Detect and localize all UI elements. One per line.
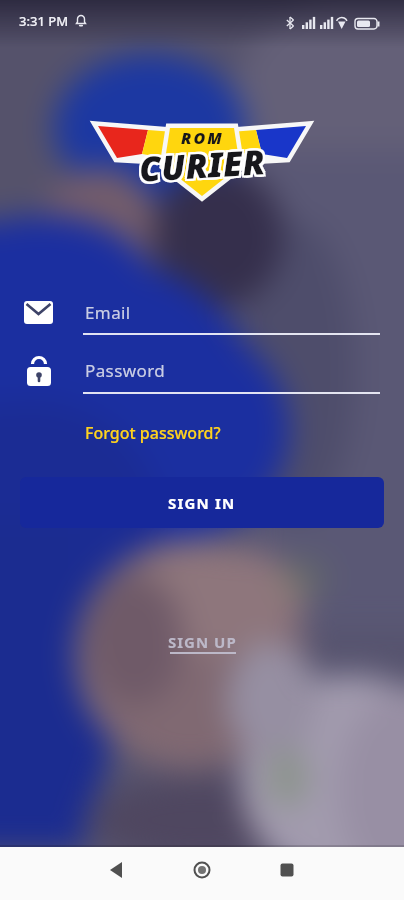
staticText: CURIER bbox=[138, 140, 267, 188]
staticText: CURIER bbox=[140, 140, 269, 188]
staticText: CURIER bbox=[140, 136, 269, 184]
staticText: CURIER bbox=[136, 140, 265, 188]
button[interactable]: Password bbox=[83, 353, 380, 395]
staticText: SIGN UP bbox=[168, 632, 237, 652]
button[interactable] bbox=[104, 857, 130, 883]
staticText: SIGN IN bbox=[168, 493, 236, 513]
staticText: CURIER bbox=[140, 138, 269, 186]
button[interactable]: SIGN UP bbox=[168, 632, 237, 654]
button[interactable] bbox=[274, 857, 300, 883]
staticText: 3:31 PM bbox=[19, 12, 69, 30]
button[interactable] bbox=[189, 857, 215, 883]
button[interactable]: Email bbox=[83, 296, 380, 336]
staticText: CURIER bbox=[138, 136, 267, 184]
staticText: Password bbox=[85, 359, 166, 382]
staticText: ROM bbox=[181, 127, 224, 149]
staticText: CURIER bbox=[136, 138, 265, 186]
button[interactable]: SIGN IN bbox=[20, 477, 384, 528]
button[interactable]: Forgot password? bbox=[83, 418, 219, 440]
staticText: CURIER bbox=[138, 138, 267, 186]
staticText: CURIER bbox=[136, 136, 265, 184]
staticText: Email bbox=[85, 301, 131, 324]
staticText: Forgot password? bbox=[85, 422, 221, 444]
